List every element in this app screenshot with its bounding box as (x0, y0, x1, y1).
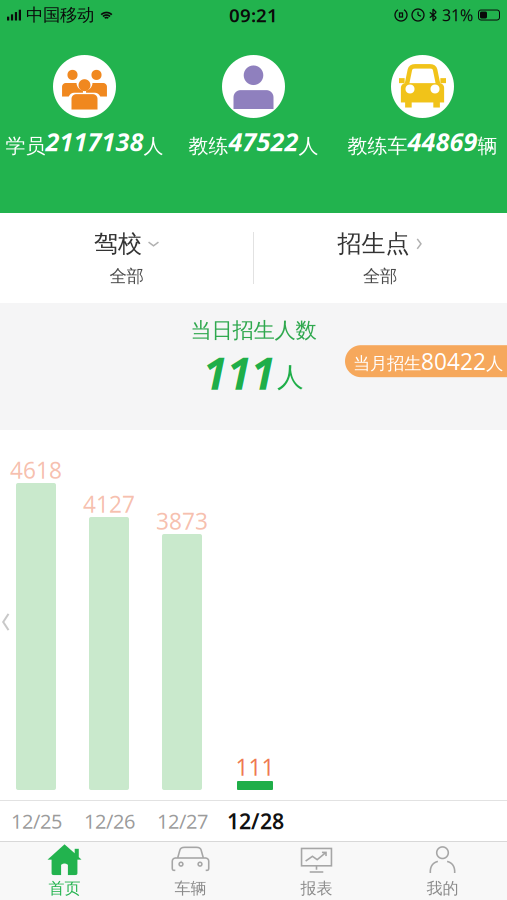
staticText: 全部 (363, 266, 397, 287)
staticText: 2117138 (45, 125, 143, 158)
staticText: 教练 (188, 134, 228, 158)
staticText: 当日招生人数 (190, 317, 316, 343)
staticText: 驾校 (94, 229, 142, 259)
staticText: 车辆 (174, 879, 206, 898)
staticText: 111 (203, 343, 275, 402)
button[interactable]: 报表 (253, 842, 379, 899)
staticText: 招生点 (337, 229, 409, 259)
staticText: 人 (143, 134, 163, 158)
staticText: 3873 (156, 506, 208, 536)
staticText: 31% (442, 4, 473, 26)
button[interactable]: 当月招生 (345, 345, 507, 377)
staticText: 4618 (10, 455, 62, 485)
staticText: 80422 (421, 346, 486, 376)
staticText: 12/26 (84, 808, 135, 834)
button[interactable]: 招生点 (253, 213, 507, 303)
staticText: 中国移动 (26, 4, 94, 26)
staticText: 4127 (83, 489, 135, 519)
staticText: 09:21 (229, 3, 278, 27)
button[interactable]: 我的 (379, 842, 505, 899)
staticText: 人 (298, 134, 318, 158)
staticText: 人 (277, 361, 304, 394)
staticText: 教练车 (347, 134, 407, 158)
staticText: 12/25 (11, 808, 62, 834)
staticText: 我的 (426, 879, 458, 898)
staticText: 12/28 (227, 807, 284, 835)
staticText: 学员 (5, 134, 45, 158)
staticText: 报表 (300, 879, 332, 898)
button[interactable]: 驾校 (0, 213, 253, 303)
staticText: 111 (235, 752, 274, 782)
staticText: 人 (486, 353, 503, 374)
staticText: 44869 (407, 125, 477, 158)
staticText: 辆 (477, 134, 497, 158)
button[interactable]: 车辆 (127, 842, 253, 899)
button[interactable]: Previous page (0, 430, 11, 631)
staticText: 全部 (109, 266, 143, 287)
staticText: 47522 (228, 125, 298, 158)
staticText: 当月招生 (353, 353, 421, 374)
staticText: 首页 (48, 879, 80, 898)
button[interactable]: 首页 (1, 842, 127, 899)
staticText: 12/27 (157, 808, 208, 834)
